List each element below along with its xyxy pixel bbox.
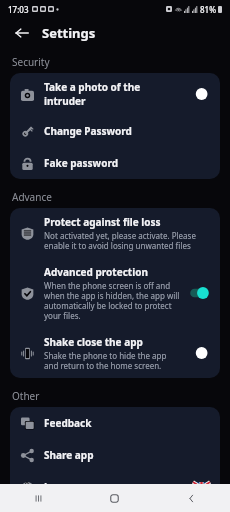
button[interactable]: Recents [0,484,76,512]
staticText: Take a photo of the intruder [44,80,182,108]
button[interactable]: Protect against file loss [10,208,220,258]
staticText: Not activated yet, please activate. Plea… [44,230,210,251]
staticText: Feedback [44,416,92,430]
button[interactable]: Advanced protection [10,258,220,328]
button[interactable]: Shake close the app [10,328,220,378]
button[interactable]: Language [10,471,220,503]
staticText: 81% [200,4,216,15]
button[interactable] [188,87,210,101]
staticText: Security [12,55,50,69]
staticText: Protect against file loss [44,215,161,229]
button[interactable]: Share app [10,439,220,471]
button[interactable] [188,286,210,300]
staticText: Advanced protection [44,265,148,279]
staticText: Advance [12,190,52,204]
staticText: When the phone screen is off and when th… [44,280,182,321]
staticText: 17:03 [8,4,29,15]
button[interactable] [188,346,210,360]
staticText: Fake password [44,156,118,170]
staticText: Shake the phone to hide the app and retu… [44,350,182,371]
staticText: Shake close the app [44,335,143,349]
staticText: Change Password [44,124,132,138]
staticText: Language [44,480,94,494]
button[interactable]: Fake password [10,147,220,179]
staticText: Share app [44,448,94,462]
button[interactable]: Take a photo of the intruder [10,73,220,115]
button[interactable]: Home [76,484,153,512]
button[interactable]: Back [153,484,230,512]
button[interactable]: Feedback [10,407,220,439]
button[interactable]: Back [10,21,34,45]
button[interactable]: Change Password [10,115,220,147]
staticText: Other [12,389,40,403]
staticText: Settings [42,24,96,42]
